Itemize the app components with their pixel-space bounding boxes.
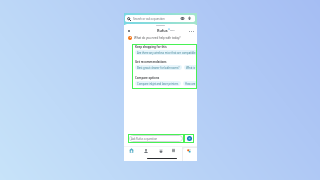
button[interactable]: Compare inkjet and laser printers <box>135 81 181 86</box>
staticText: Rufus <box>157 28 168 33</box>
button[interactable]: Close <box>126 28 132 34</box>
button[interactable]: Home <box>126 146 136 158</box>
button[interactable]: Are there any wireless mice that are com… <box>135 50 197 55</box>
button[interactable]: How are <box>183 81 197 86</box>
button[interactable]: Account <box>141 146 151 158</box>
staticText: Search or ask a question <box>133 17 165 21</box>
staticText: Get recommendations <box>135 60 167 64</box>
staticText: Ask Rufus a question <box>131 137 158 141</box>
button[interactable]: Best grout cleaner for bathrooms? <box>135 65 182 70</box>
staticText: Compare options <box>135 76 160 80</box>
staticText: Are there any wireless mice that are com… <box>137 51 196 55</box>
button[interactable]: What is t <box>184 65 197 70</box>
button[interactable]: Cart <box>156 146 166 158</box>
staticText: What is t <box>186 66 197 70</box>
staticText: Best grout cleaner for bathrooms? <box>137 66 180 70</box>
staticText: How are <box>185 82 196 86</box>
staticText: Keep shopping for this <box>135 45 167 49</box>
staticText: Compare inkjet and laser printers <box>137 82 179 86</box>
staticText: beta <box>170 29 175 32</box>
button[interactable]: More options <box>188 28 194 34</box>
button[interactable]: Search or ask a question <box>125 15 195 22</box>
button[interactable]: Rufus assistant <box>184 146 194 158</box>
button[interactable]: Send message <box>184 134 194 143</box>
button[interactable]: Menu <box>169 146 179 158</box>
button[interactable]: Ask Rufus a question <box>129 135 183 142</box>
staticText: What do you need help with today? <box>134 36 181 40</box>
